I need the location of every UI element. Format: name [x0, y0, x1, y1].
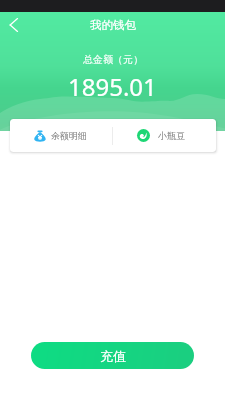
staticText: 总金额（元）	[83, 53, 143, 66]
staticText: 余额明细	[51, 130, 87, 141]
button[interactable]: 充值	[31, 342, 194, 369]
staticText: 小瓶豆	[158, 130, 185, 141]
button[interactable]: 余额明细	[10, 119, 112, 152]
staticText: 1895.01	[68, 70, 157, 103]
button[interactable]: Back	[2, 13, 26, 37]
staticText: 我的钱包	[90, 18, 136, 32]
button[interactable]: 小瓶豆	[113, 119, 216, 152]
staticText: 充值	[100, 348, 126, 364]
